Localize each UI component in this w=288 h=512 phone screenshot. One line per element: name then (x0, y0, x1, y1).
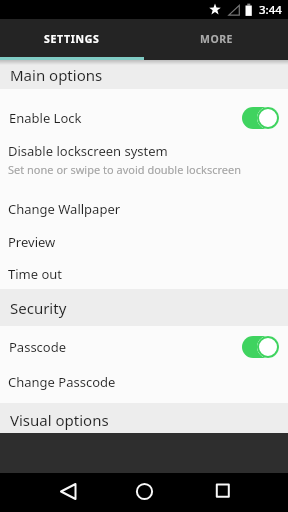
staticText: MORE (200, 32, 233, 46)
staticText: Change Wallpaper (8, 200, 121, 218)
staticText: Visual options (10, 410, 109, 430)
button[interactable] (192, 473, 288, 512)
button[interactable]: MORE (144, 19, 288, 60)
button[interactable] (0, 193, 288, 225)
staticText: Change Passcode (8, 373, 116, 391)
staticText: Time out (8, 265, 63, 283)
button[interactable] (96, 473, 192, 512)
staticText: Security (10, 298, 67, 318)
button[interactable] (0, 326, 288, 366)
button[interactable] (0, 146, 288, 189)
staticText: Preview (8, 233, 56, 251)
staticText: Set none or swipe to avoid double locksc… (8, 162, 242, 177)
staticText: 3:44 (259, 2, 282, 18)
button[interactable] (0, 473, 96, 512)
staticText: Main options (10, 65, 103, 85)
button[interactable]: SETTINGS (0, 19, 144, 60)
staticText: Enable Lock (9, 109, 82, 127)
staticText: Disable lockscreen system (8, 142, 168, 160)
button[interactable] (0, 366, 288, 398)
staticText: Passcode (9, 338, 67, 356)
staticText: SETTINGS (44, 32, 100, 46)
button[interactable] (0, 89, 288, 146)
button[interactable] (0, 258, 288, 289)
button[interactable] (0, 226, 288, 258)
